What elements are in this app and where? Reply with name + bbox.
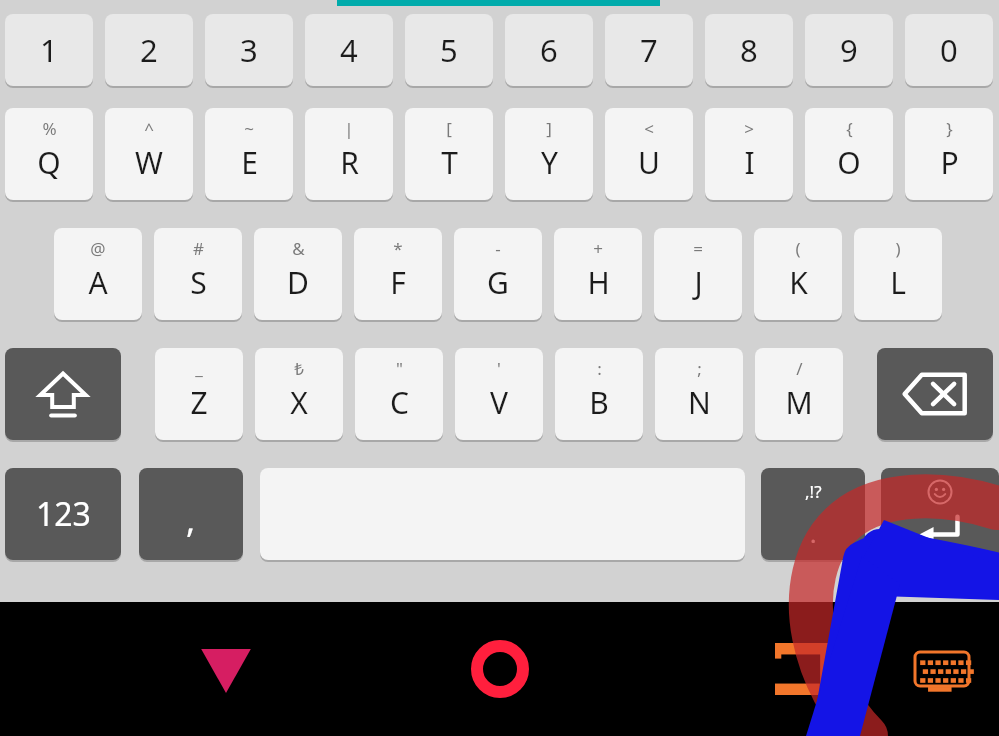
staticText: I (744, 142, 755, 183)
staticText: 6 (540, 29, 558, 71)
button[interactable]: ,!? (761, 468, 865, 560)
button[interactable]: Switch keyboard (903, 630, 981, 708)
staticText: 0 (940, 29, 958, 71)
button[interactable]: ) (854, 228, 942, 320)
button[interactable]: 7 (605, 14, 693, 86)
staticText: | (344, 117, 354, 140)
button[interactable]: 4 (305, 14, 393, 86)
button[interactable]: - (454, 228, 542, 320)
button[interactable]: ~ (205, 108, 293, 200)
button[interactable]: " (355, 348, 443, 440)
staticText: - (495, 237, 501, 260)
button[interactable]: * (354, 228, 442, 320)
button[interactable]: ₺ (255, 348, 343, 440)
button[interactable]: _ (155, 348, 243, 440)
button[interactable]: | (305, 108, 393, 200)
button[interactable]: / (755, 348, 843, 440)
button[interactable]: 9 (805, 14, 893, 86)
button[interactable]: Enter (881, 468, 999, 560)
staticText: E (241, 142, 258, 183)
staticText: ; (697, 357, 702, 380)
staticText: R (340, 142, 359, 183)
button[interactable]: ] (505, 108, 593, 200)
staticText: A (88, 262, 108, 303)
button[interactable]: Recent apps (757, 623, 849, 715)
staticText: Q (37, 142, 61, 183)
button[interactable]: 6 (505, 14, 593, 86)
staticText: B (589, 382, 609, 423)
button[interactable]: Home (454, 623, 546, 715)
staticText: Z (190, 382, 208, 423)
staticText: * (393, 237, 403, 260)
staticText: 7 (640, 29, 658, 71)
button[interactable]: } (905, 108, 993, 200)
staticText: S (190, 262, 207, 303)
staticText: V (490, 382, 508, 423)
button[interactable]: + (554, 228, 642, 320)
staticText: @ (90, 237, 106, 260)
staticText: X (290, 382, 308, 423)
staticText: ₺ (294, 357, 304, 380)
button[interactable]: 8 (705, 14, 793, 86)
button[interactable]: = (654, 228, 742, 320)
button[interactable]: 2 (105, 14, 193, 86)
staticText: 8 (740, 29, 758, 71)
staticText: J (694, 262, 703, 303)
staticText: U (638, 142, 660, 183)
staticText: 123 (36, 492, 91, 536)
button[interactable]: @ (54, 228, 142, 320)
staticText: H (587, 262, 610, 303)
staticText: C (390, 382, 409, 423)
button[interactable]: ' (455, 348, 543, 440)
staticText: # (193, 237, 204, 260)
button[interactable]: 1 (5, 14, 93, 86)
button[interactable]: Shift (5, 348, 121, 440)
staticText: < (644, 117, 654, 140)
button[interactable]: 123 (5, 468, 121, 560)
button[interactable]: , (139, 468, 243, 560)
staticText: , (186, 497, 196, 543)
staticText: P (940, 142, 959, 183)
button[interactable]: Backspace (877, 348, 993, 440)
staticText: ( (795, 237, 801, 260)
staticText: ~ (244, 117, 254, 140)
button[interactable]: ^ (105, 108, 193, 200)
button[interactable]: : (555, 348, 643, 440)
staticText: ) (895, 237, 901, 260)
staticText: Y (541, 142, 558, 183)
staticText: _ (195, 357, 203, 380)
staticText: F (390, 262, 406, 303)
staticText: . (810, 517, 817, 550)
button[interactable]: 5 (405, 14, 493, 86)
button[interactable]: ( (754, 228, 842, 320)
button[interactable]: Back (180, 623, 272, 715)
staticText: > (744, 117, 754, 140)
staticText: " (396, 357, 403, 380)
button[interactable]: % (5, 108, 93, 200)
button[interactable]: ; (655, 348, 743, 440)
staticText: = (693, 237, 703, 260)
staticText: ,!? (805, 480, 822, 503)
staticText: W (135, 142, 163, 183)
staticText: 3 (240, 29, 258, 71)
button[interactable]: < (605, 108, 693, 200)
button[interactable]: > (705, 108, 793, 200)
staticText: & (292, 237, 305, 260)
button[interactable]: 3 (205, 14, 293, 86)
staticText: O (837, 142, 861, 183)
staticText: M (785, 382, 813, 423)
staticText: } (946, 117, 953, 140)
button[interactable]: 0 (905, 14, 993, 86)
button[interactable]: [ (405, 108, 493, 200)
button[interactable]: & (254, 228, 342, 320)
staticText: ^ (144, 117, 154, 140)
staticText: T (441, 142, 458, 183)
staticText: 9 (840, 29, 858, 71)
staticText: 4 (340, 29, 358, 71)
staticText: / (796, 357, 803, 380)
staticText: 2 (140, 29, 158, 71)
button[interactable]: # (154, 228, 242, 320)
button[interactable]: { (805, 108, 893, 200)
staticText: ' (497, 357, 501, 380)
